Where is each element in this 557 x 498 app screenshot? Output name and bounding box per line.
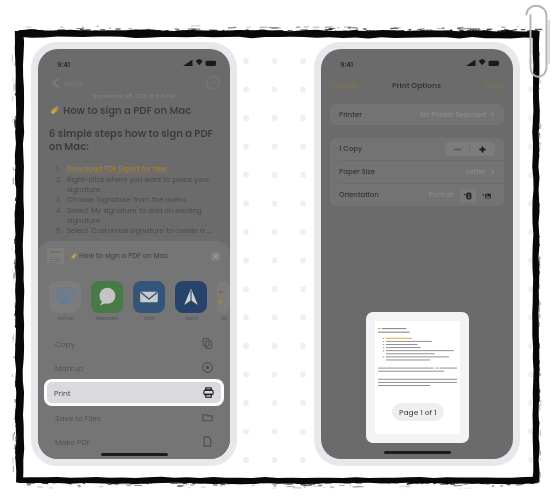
staticText: 5.	[56, 226, 67, 236]
staticText: Save to Files	[55, 413, 101, 423]
staticText: Right-click where you want to place your…	[67, 175, 219, 194]
staticText: Orientation	[339, 190, 379, 200]
button[interactable]: Mail	[133, 281, 165, 321]
staticText: Cancel	[331, 80, 358, 90]
staticText: 4.	[56, 206, 67, 216]
button[interactable]: Print	[486, 80, 503, 90]
staticText: How to sign a PDF on Mac	[79, 251, 169, 261]
button[interactable]: AirDrop	[49, 281, 81, 321]
button[interactable]: Save to Files	[44, 406, 224, 429]
staticText: Printer	[339, 110, 362, 120]
staticText: Download PDF Expert for free.	[67, 164, 168, 174]
button[interactable]: Messages	[91, 281, 123, 321]
button[interactable]: Re	[217, 281, 230, 321]
staticText: Markup	[55, 363, 84, 373]
button[interactable]: Increase copies	[470, 142, 495, 156]
button[interactable]: Markup	[44, 356, 224, 379]
staticText: Print Options	[392, 80, 442, 90]
button[interactable]: Copy	[44, 332, 224, 355]
staticText: Print	[54, 388, 71, 398]
staticText: Mail	[144, 315, 154, 321]
staticText: Letter	[466, 167, 486, 177]
staticText: Paper Size	[339, 167, 376, 177]
button[interactable]: More	[206, 76, 220, 90]
staticText: Notes	[64, 79, 83, 88]
staticText: 6 simple steps how to sign a PDF on Mac:	[49, 126, 219, 154]
staticText: 2.	[56, 175, 67, 185]
button[interactable]: Paper Size	[330, 161, 504, 183]
staticText: Re	[221, 315, 227, 321]
staticText: 9:41	[340, 60, 354, 70]
staticText: Copy	[55, 339, 75, 349]
staticText: Select 'Customize signature' to create a…	[67, 226, 212, 236]
staticText: September 28, 2021 at 5:16 PM	[38, 92, 230, 100]
button[interactable]: Make PDF	[44, 430, 224, 453]
staticText: Choose 'Signature' from the menu.	[67, 195, 188, 205]
staticText: Page 1 of 1	[399, 407, 437, 417]
staticText: Spark	[185, 315, 198, 321]
button[interactable]: Close	[210, 251, 221, 262]
staticText: Print	[486, 80, 503, 90]
staticText: Messages	[95, 315, 119, 321]
staticText: Select 'My signature' to add on existing…	[67, 206, 219, 225]
staticText: Portrait	[429, 190, 455, 200]
staticText: Make PDF	[55, 437, 91, 447]
button[interactable]: Cancel	[331, 80, 358, 90]
staticText: How to sign a PDF on Mac	[63, 103, 192, 117]
button[interactable]: Landscape	[479, 189, 495, 202]
button[interactable]: Printer	[330, 104, 504, 125]
staticText: 1.	[56, 164, 67, 174]
staticText: 9:41	[57, 60, 71, 70]
staticText: AirDrop	[57, 315, 74, 321]
button[interactable]: Print	[47, 382, 221, 403]
button[interactable]: Back	[48, 75, 64, 91]
staticText: 3.	[56, 195, 67, 205]
button[interactable]: Portrait	[460, 189, 476, 202]
staticText: No Printer Selected	[420, 110, 486, 120]
button[interactable]: Spark	[175, 281, 207, 321]
button[interactable]: Decrease copies	[445, 142, 469, 156]
staticText: 1 Copy	[339, 144, 362, 154]
